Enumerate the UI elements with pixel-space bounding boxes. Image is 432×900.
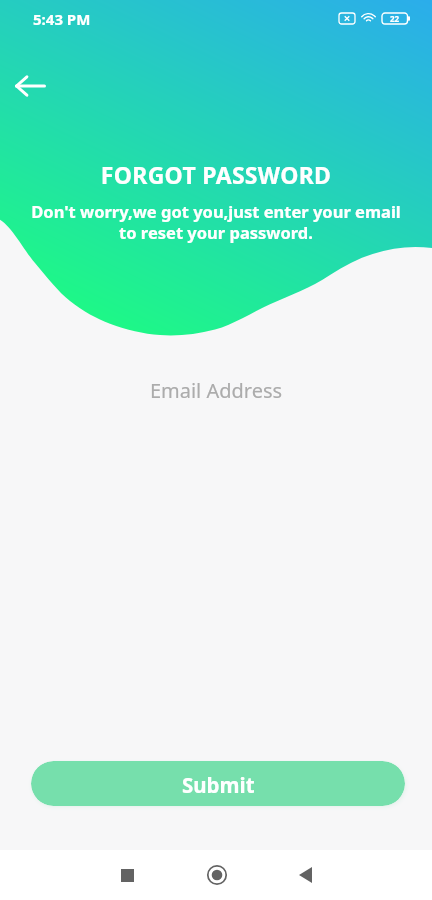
- staticText: 22: [390, 13, 400, 24]
- button[interactable]: Submit: [31, 761, 405, 806]
- button[interactable]: Recent apps: [106, 854, 148, 896]
- button[interactable]: Back: [2, 66, 58, 106]
- button[interactable]: Back: [284, 854, 326, 896]
- staticText: Submit: [182, 771, 255, 799]
- staticText: FORGOT PASSWORD: [0, 159, 432, 190]
- staticText: Email Address: [0, 377, 432, 404]
- staticText: Don't worry,we got you,just enter your e…: [0, 200, 432, 244]
- staticText: 5:43 PM: [33, 9, 91, 29]
- button[interactable]: Home: [196, 854, 238, 896]
